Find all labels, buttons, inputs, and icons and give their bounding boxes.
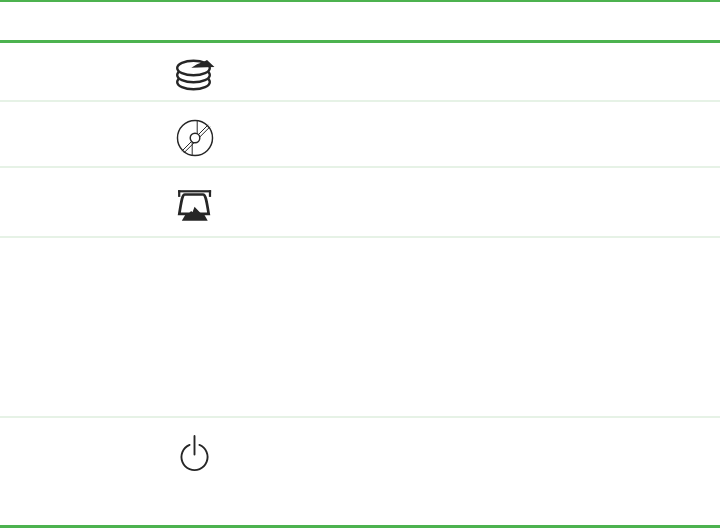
button[interactable]: Power off — [0, 418, 720, 525]
button[interactable]: Slide projector — [0, 168, 720, 236]
button[interactable]: Export database — [0, 43, 720, 100]
button[interactable]: Disc — [0, 102, 720, 166]
